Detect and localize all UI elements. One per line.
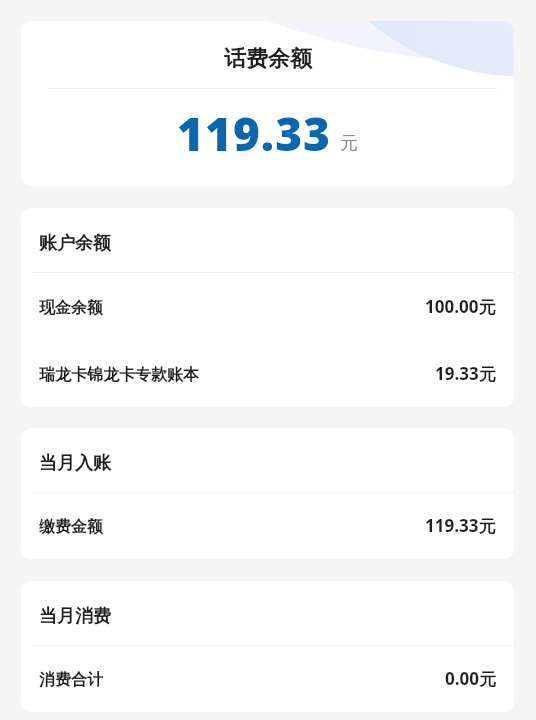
staticText: 0.00元 <box>445 667 496 690</box>
staticText: 当月消费 <box>39 605 111 628</box>
staticText: 元 <box>340 132 358 155</box>
staticText: 现金余额 <box>39 298 103 318</box>
button[interactable]: 话费余额 <box>21 21 514 186</box>
staticText: 119.33元 <box>425 514 496 537</box>
staticText: 119.33 <box>177 102 332 165</box>
staticText: 100.00元 <box>425 295 496 318</box>
button[interactable]: 缴费金额 <box>21 493 514 559</box>
staticText: 话费余额 <box>224 45 312 73</box>
staticText: 账户余额 <box>39 232 111 255</box>
staticText: 当月入账 <box>39 452 111 475</box>
staticText: 消费合计 <box>39 670 103 690</box>
button[interactable]: 消费合计 <box>21 646 514 712</box>
staticText: 瑞龙卡锦龙卡专款账本 <box>39 365 199 385</box>
staticText: 缴费金额 <box>39 517 103 537</box>
staticText: 19.33元 <box>435 362 496 385</box>
button[interactable]: 现金余额 <box>21 273 514 341</box>
button[interactable]: 瑞龙卡锦龙卡专款账本 <box>21 341 514 407</box>
